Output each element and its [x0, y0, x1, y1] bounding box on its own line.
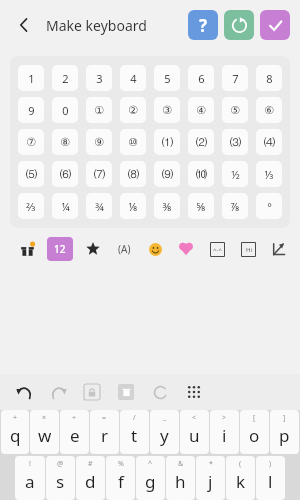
button[interactable]: 8: [256, 65, 282, 91]
button[interactable]: 6: [188, 65, 214, 91]
button[interactable]: Stickers: [16, 238, 38, 260]
button[interactable]: Back: [10, 11, 38, 39]
button[interactable]: ⑽: [188, 161, 214, 187]
button[interactable]: 7: [222, 65, 248, 91]
button[interactable]: Favorites: [82, 238, 104, 260]
button[interactable]: ⑤: [222, 97, 248, 123]
staticText: /: [133, 413, 136, 423]
staticText: *: [209, 459, 213, 469]
staticText: ⑹: [60, 167, 71, 181]
button[interactable]: ⑴: [154, 129, 180, 155]
button[interactable]: @: [46, 456, 75, 500]
button[interactable]: ⅞: [222, 193, 248, 219]
button[interactable]: ⑥: [256, 97, 282, 123]
staticText: 1: [28, 71, 35, 86]
button[interactable]: Refresh: [148, 380, 172, 404]
button[interactable]: ⑨: [86, 129, 112, 155]
button[interactable]: 4: [120, 65, 146, 91]
staticText: Hi: [246, 246, 252, 254]
button[interactable]: <: [180, 410, 209, 454]
button[interactable]: Help: [188, 10, 218, 40]
staticText: d: [85, 470, 96, 493]
button[interactable]: ①: [86, 97, 112, 123]
button[interactable]: ⑦: [18, 129, 44, 155]
button[interactable]: 12: [47, 237, 73, 261]
button[interactable]: Letters: [113, 238, 135, 260]
button[interactable]: *: [196, 456, 225, 500]
button[interactable]: 5: [154, 65, 180, 91]
staticText: ÷: [72, 413, 77, 423]
button[interactable]: Arrow: [268, 238, 290, 260]
button[interactable]: ⑸: [18, 161, 44, 187]
button[interactable]: 9: [18, 97, 44, 123]
staticText: o: [249, 424, 260, 447]
button[interactable]: >: [210, 410, 239, 454]
button[interactable]: Confirm: [260, 10, 290, 40]
staticText: ¾: [95, 199, 104, 214]
button[interactable]: ½: [222, 161, 248, 187]
button[interactable]: ⅜: [154, 193, 180, 219]
button[interactable]: 2: [52, 65, 78, 91]
button[interactable]: Reset: [224, 10, 254, 40]
button[interactable]: Face: [206, 238, 228, 260]
button[interactable]: ^: [136, 456, 165, 500]
staticText: a: [25, 470, 35, 493]
button[interactable]: More: [182, 380, 206, 404]
button[interactable]: 3: [86, 65, 112, 91]
button[interactable]: ⑻: [120, 161, 146, 187]
button[interactable]: Heart: [175, 238, 197, 260]
button[interactable]: ⑧: [52, 129, 78, 155]
button[interactable]: ¼: [52, 193, 78, 219]
button[interactable]: ⑵: [188, 129, 214, 155]
button[interactable]: ]: [270, 410, 299, 454]
staticText: ②: [128, 104, 138, 117]
button[interactable]: Undo: [12, 380, 36, 404]
staticText: ⑨: [94, 136, 104, 149]
staticText: ⑺: [94, 167, 105, 181]
staticText: %: [118, 459, 124, 469]
button[interactable]: ⑩: [120, 129, 146, 155]
button[interactable]: ②: [120, 97, 146, 123]
button[interactable]: !: [15, 456, 45, 500]
button[interactable]: Text: [237, 238, 259, 260]
button[interactable]: ⅔: [18, 193, 44, 219]
staticText: !: [29, 459, 31, 469]
button[interactable]: Lock: [80, 380, 104, 404]
button[interactable]: +: [1, 410, 29, 454]
button[interactable]: 0: [52, 97, 78, 123]
button[interactable]: ⅛: [120, 193, 146, 219]
button[interactable]: ④: [188, 97, 214, 123]
button[interactable]: ⑷: [256, 129, 282, 155]
button[interactable]: Delete: [114, 380, 138, 404]
button[interactable]: ③: [154, 97, 180, 123]
staticText: ⑴: [162, 135, 173, 149]
button[interactable]: ⑶: [222, 129, 248, 155]
button[interactable]: &: [166, 456, 195, 500]
staticText: ⅞: [230, 199, 240, 214]
button[interactable]: %: [106, 456, 135, 500]
button[interactable]: _: [150, 410, 179, 454]
button[interactable]: ⅓: [256, 161, 282, 187]
button[interactable]: ×: [30, 410, 59, 454]
button[interactable]: ÷: [60, 410, 89, 454]
button[interactable]: [: [240, 410, 269, 454]
staticText: #: [88, 459, 93, 469]
button[interactable]: =: [90, 410, 119, 454]
button[interactable]: ): [256, 456, 285, 500]
button[interactable]: Redo: [46, 380, 70, 404]
button[interactable]: /: [120, 410, 149, 454]
staticText: l: [268, 470, 273, 493]
button[interactable]: Emoji: [144, 238, 166, 260]
button[interactable]: ⑹: [52, 161, 78, 187]
staticText: 12: [54, 242, 66, 256]
button[interactable]: 1: [18, 65, 44, 91]
button[interactable]: ¾: [86, 193, 112, 219]
button[interactable]: #: [76, 456, 105, 500]
button[interactable]: ⑺: [86, 161, 112, 187]
button[interactable]: ⑼: [154, 161, 180, 187]
button[interactable]: ⅝: [188, 193, 214, 219]
button[interactable]: °: [256, 193, 282, 219]
staticText: g: [145, 470, 156, 493]
staticText: 0: [62, 103, 69, 118]
button[interactable]: (: [226, 456, 255, 500]
